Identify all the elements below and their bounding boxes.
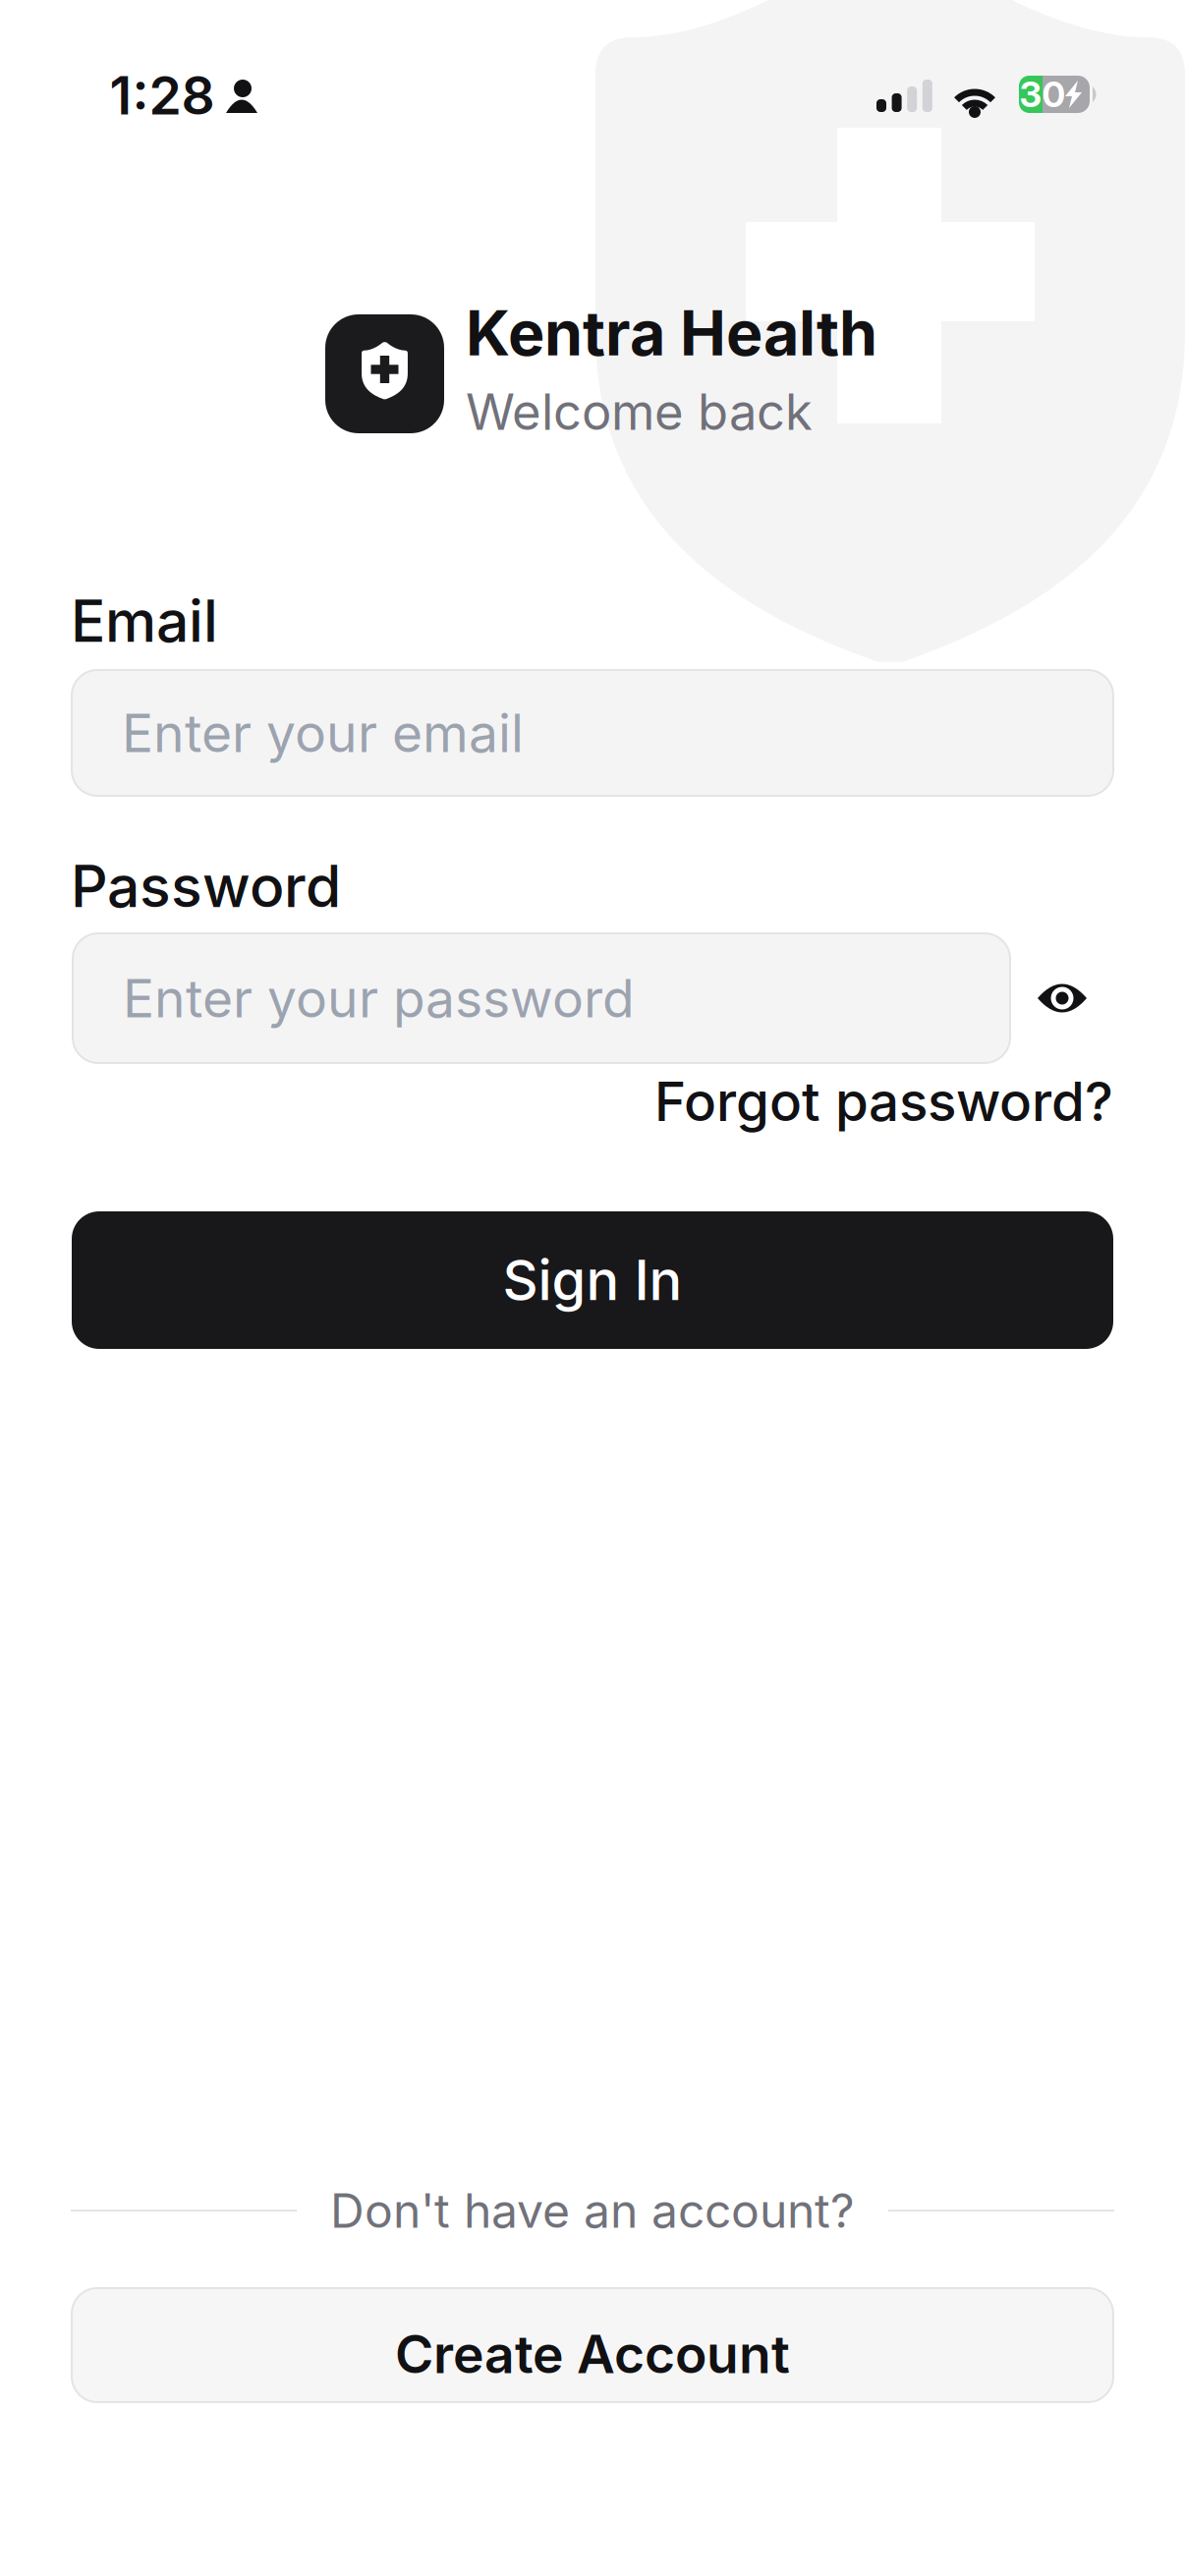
staticText: Email [71, 586, 218, 656]
button[interactable] [1031, 967, 1094, 1030]
staticText: 30 [1019, 73, 1066, 116]
staticText: Forgot password? [654, 1069, 1113, 1134]
staticText: Kentra Health [466, 296, 877, 370]
button[interactable]: Enter your email [72, 670, 1113, 796]
staticText: Create Account [395, 2322, 790, 2386]
button[interactable]: Sign In [72, 1211, 1113, 1349]
staticText: Enter your email [122, 701, 524, 765]
staticText: Welcome back [466, 381, 813, 442]
button[interactable]: Create Account [72, 2288, 1113, 2402]
button[interactable]: Forgot password? [654, 1069, 1113, 1134]
staticText: Enter your password [123, 966, 635, 1030]
button[interactable]: Enter your password [73, 933, 1010, 1063]
staticText: Password [71, 851, 341, 921]
staticText: Sign In [503, 1247, 682, 1313]
staticText: 1:28 [110, 64, 215, 127]
staticText: Don't have an account? [330, 2182, 855, 2239]
